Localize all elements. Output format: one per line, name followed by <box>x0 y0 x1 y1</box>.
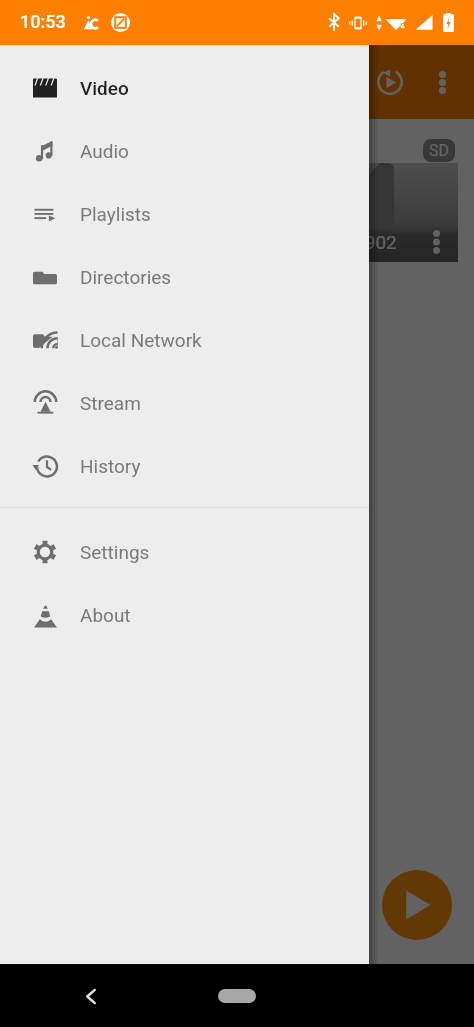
staticText: History <box>80 455 141 477</box>
button[interactable]: History <box>0 434 369 497</box>
button[interactable]: Settings <box>0 520 369 583</box>
staticText: Settings <box>80 541 150 563</box>
button[interactable]: About <box>0 583 369 646</box>
button[interactable]: Playlists <box>0 182 369 245</box>
button[interactable]: Play <box>382 870 452 940</box>
staticText: VID_20190104902 <box>241 231 397 253</box>
staticText: Local Network <box>80 329 202 351</box>
staticText: Audio <box>80 140 129 162</box>
button[interactable]: Directories <box>0 245 369 308</box>
button[interactable]: Video <box>0 56 369 119</box>
staticText: 10:53 <box>20 11 66 32</box>
staticText: Video <box>80 77 129 99</box>
staticText: Stream <box>80 392 141 414</box>
button[interactable]: Home <box>218 989 256 1003</box>
button[interactable]: Item options <box>424 230 448 254</box>
button[interactable]: SD <box>234 163 458 262</box>
staticText: Directories <box>80 266 172 288</box>
staticText: SD <box>429 141 449 160</box>
staticText: About <box>80 604 131 626</box>
button[interactable]: Audio <box>0 119 369 182</box>
button[interactable]: More options <box>416 56 468 108</box>
staticText: Playlists <box>80 203 151 225</box>
button[interactable]: Resume playback <box>364 56 416 108</box>
button[interactable]: Stream <box>0 371 369 434</box>
button[interactable]: Local Network <box>0 308 369 371</box>
button[interactable]: Back <box>71 976 111 1016</box>
